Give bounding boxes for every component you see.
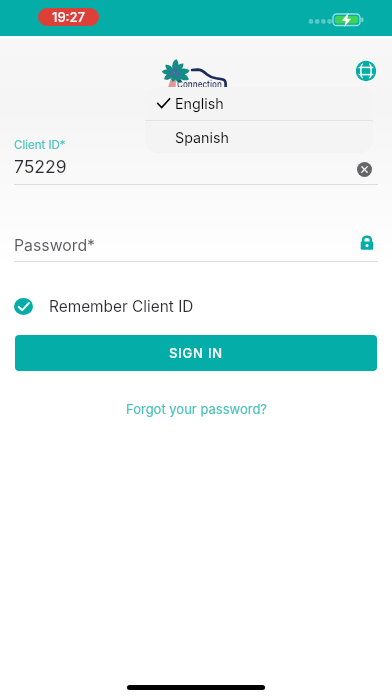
staticText: SIGN IN bbox=[169, 345, 223, 361]
staticText: Remember Client ID bbox=[49, 297, 194, 316]
staticText: Spanish bbox=[175, 129, 230, 146]
staticText: Password* bbox=[14, 236, 96, 255]
button[interactable]: Spanish bbox=[145, 121, 373, 153]
staticText: Forgot your password? bbox=[126, 401, 267, 417]
button[interactable]: Remember Client ID bbox=[14, 294, 194, 318]
button[interactable]: SIGN IN bbox=[15, 335, 377, 371]
button[interactable]: Forgot your password? bbox=[120, 399, 273, 419]
staticText: Connection bbox=[177, 78, 222, 91]
button[interactable]: Clear text bbox=[352, 157, 376, 181]
staticText: English bbox=[175, 95, 224, 112]
staticText: 19:27 bbox=[52, 9, 85, 25]
button[interactable]: English bbox=[145, 87, 373, 120]
button[interactable]: Change language bbox=[352, 57, 380, 85]
button[interactable]: Show password bbox=[355, 231, 379, 255]
staticText: Client ID* bbox=[14, 138, 66, 152]
staticText: 75229 bbox=[14, 156, 67, 177]
